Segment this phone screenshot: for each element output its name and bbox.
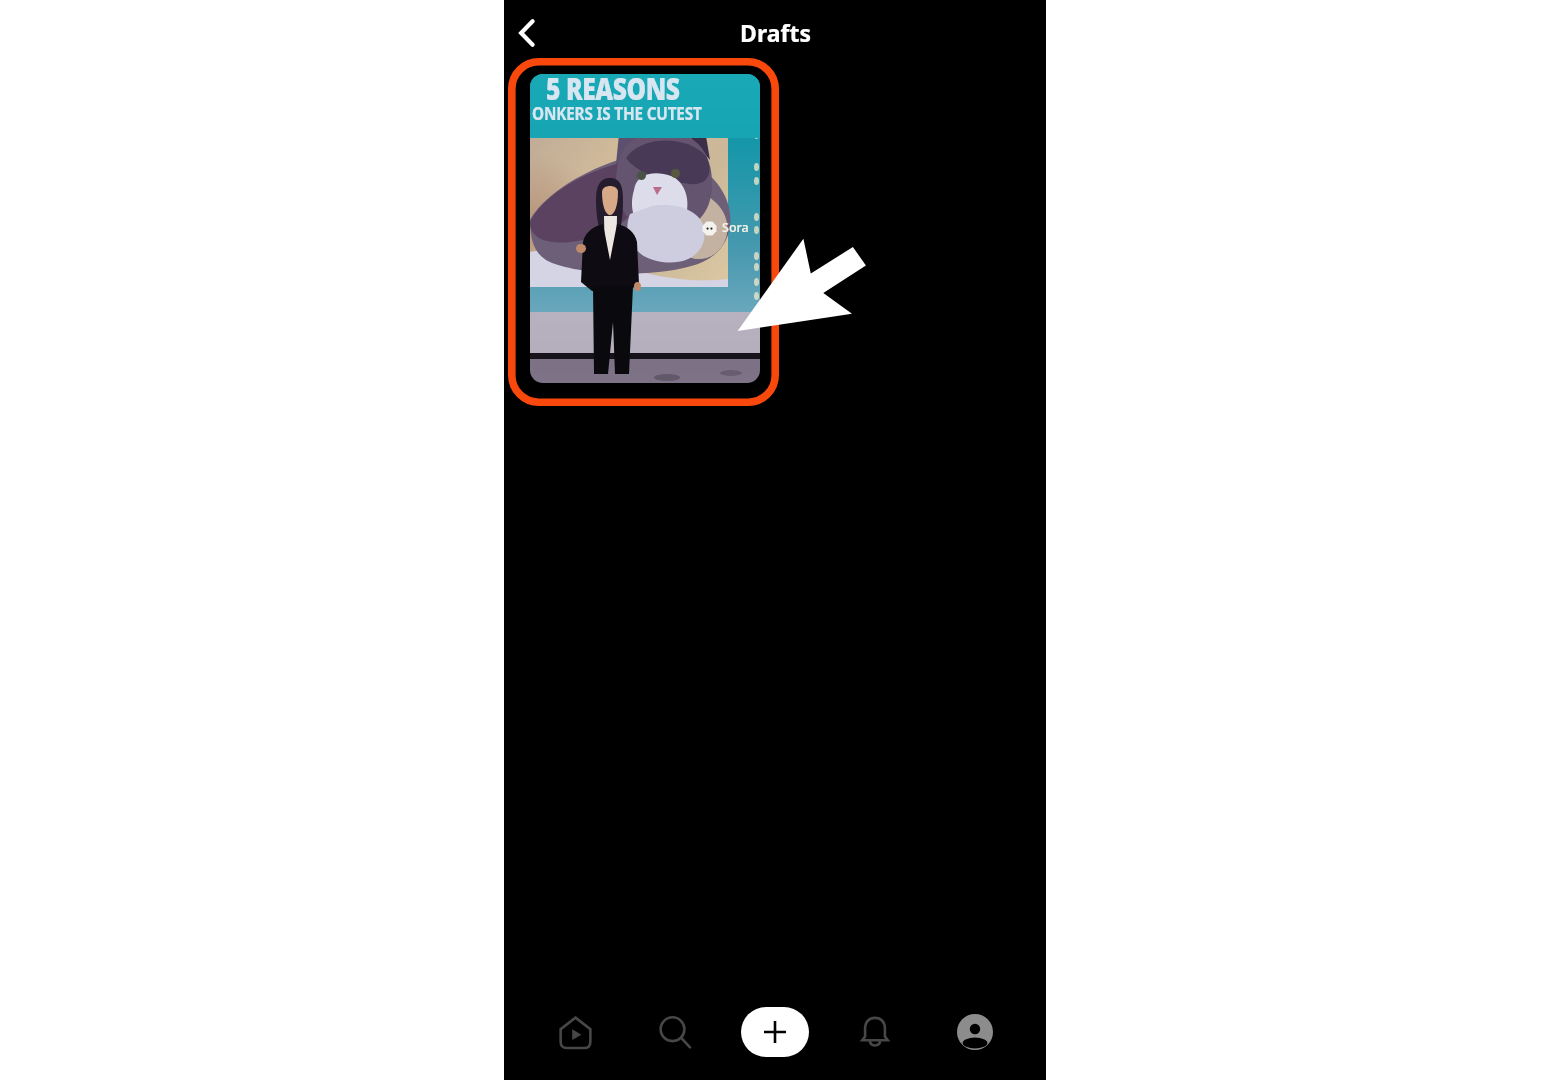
button[interactable]: Profile	[925, 984, 1025, 1080]
staticText: Drafts	[740, 17, 811, 48]
button[interactable]: Search	[625, 984, 725, 1080]
button[interactable]: Notifications	[825, 984, 925, 1080]
staticText: 5 REASONS	[546, 74, 680, 109]
button[interactable]: Home	[525, 984, 625, 1080]
button[interactable]: Create	[725, 984, 825, 1080]
staticText: ONKERS IS THE CUTEST	[532, 102, 702, 125]
button[interactable]: Back	[505, 11, 549, 55]
button[interactable]: Draft video	[508, 58, 779, 406]
staticText: Sora	[722, 219, 749, 236]
